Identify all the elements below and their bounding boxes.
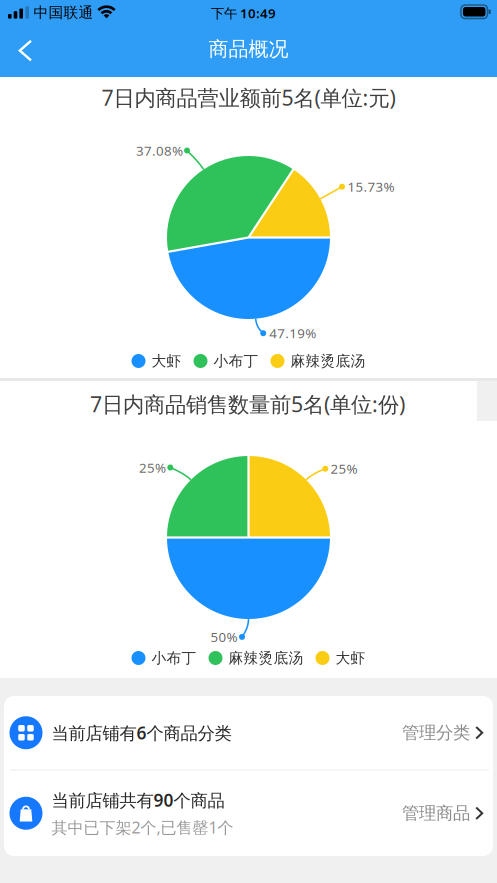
staticText: 小布丁 [213,352,258,370]
staticText: 15.73% [347,178,394,195]
staticText: 大虾 [151,352,181,370]
staticText: 麻辣烫底汤 [290,352,365,370]
staticText: 37.08% [136,142,183,159]
staticText: 商品概况 [208,37,288,61]
button[interactable]: Back [3,28,47,72]
staticText: 当前店铺有6个商品分类 [51,721,231,744]
staticText: 麻辣烫底汤 [228,649,303,667]
staticText: 7日内商品销售数量前5名(单位:份) [90,390,405,418]
button[interactable]: 当前店铺有6个商品分类 [4,696,493,769]
staticText: 中国联通 [33,4,93,22]
staticText: 7日内商品营业额前5名(单位:元) [101,83,395,112]
staticText: 47.19% [269,324,316,342]
staticText: 小布丁 [151,649,196,667]
staticText: 50% [210,628,237,646]
button[interactable]: 当前店铺共有90个商品 [4,770,493,856]
staticText: 下午 10:49 [211,4,276,22]
staticText: 当前店铺共有90个商品 [51,789,224,812]
staticText: 25% [330,460,357,477]
staticText: 管理分类 [402,722,470,743]
staticText: 其中已下架2个,已售罄1个 [51,817,233,838]
staticText: 管理商品 [402,803,470,824]
staticText: 25% [139,459,166,476]
staticText: 大虾 [335,649,365,667]
